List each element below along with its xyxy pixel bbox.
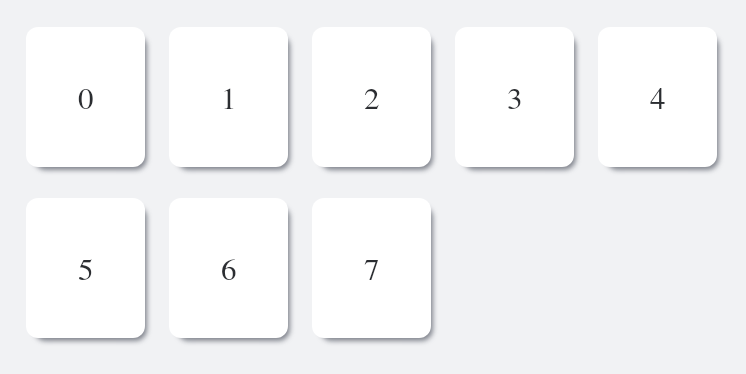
button[interactable]: 4 [598,27,717,167]
staticText: 5 [78,255,94,286]
staticText: 7 [364,255,380,286]
button[interactable]: 1 [169,27,288,167]
staticText: 4 [650,84,666,115]
button[interactable]: 5 [26,198,145,338]
staticText: 3 [507,84,523,115]
staticText: 1 [221,84,237,115]
button[interactable]: 6 [169,198,288,338]
staticText: 0 [78,84,94,115]
button[interactable]: 2 [312,27,431,167]
staticText: 2 [364,84,380,115]
staticText: 6 [221,255,237,286]
button[interactable]: 7 [312,198,431,338]
button[interactable]: 0 [26,27,145,167]
button[interactable]: 3 [455,27,574,167]
